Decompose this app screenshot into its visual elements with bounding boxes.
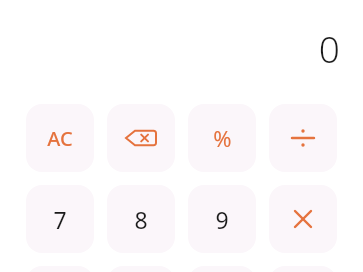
button[interactable]: 4: [26, 266, 94, 272]
button[interactable]: Divide: [269, 104, 337, 172]
button[interactable]: %: [188, 104, 256, 172]
staticText: 9: [215, 204, 229, 235]
button[interactable]: 8: [107, 185, 175, 253]
button[interactable]: 6: [188, 266, 256, 272]
button[interactable]: AC: [26, 104, 94, 172]
staticText: AC: [47, 125, 73, 152]
button[interactable]: 7: [26, 185, 94, 253]
button[interactable]: Multiply: [269, 185, 337, 253]
button[interactable]: 5: [107, 266, 175, 272]
button[interactable]: Backspace: [107, 104, 175, 172]
button[interactable]: 9: [188, 185, 256, 253]
staticText: %: [213, 123, 232, 153]
staticText: 0: [318, 23, 340, 73]
button[interactable]: −: [269, 266, 337, 272]
staticText: 8: [134, 204, 148, 235]
staticText: 7: [53, 204, 67, 235]
